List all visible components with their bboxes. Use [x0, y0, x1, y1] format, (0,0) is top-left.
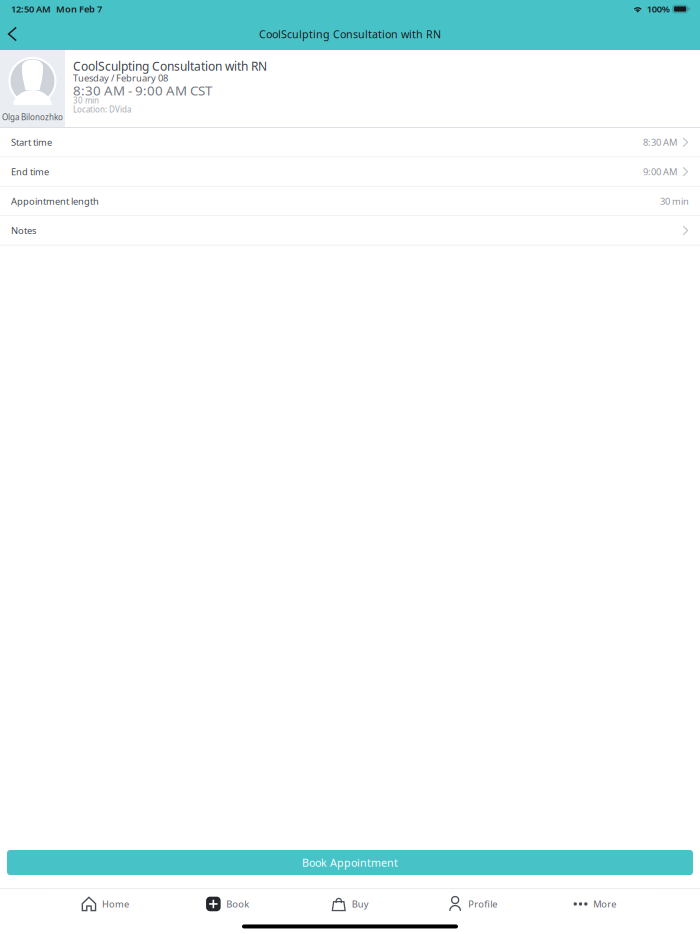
staticText: Appointment length	[11, 195, 99, 207]
button[interactable]: Back	[0, 18, 26, 50]
button[interactable]: Appointment length	[0, 187, 700, 216]
button[interactable]: Profile	[411, 889, 534, 919]
button[interactable]: Home	[44, 889, 166, 919]
button[interactable]: Buy	[289, 889, 411, 919]
staticText: End time	[11, 165, 49, 178]
staticText: CoolSculpting Consultation with RN	[73, 58, 267, 74]
staticText: 30 min	[660, 195, 689, 207]
staticText: Location: DVida	[73, 104, 131, 115]
staticText: Tuesday / February 08	[73, 72, 168, 84]
staticText: Notes	[11, 224, 36, 237]
button[interactable]: Start time	[0, 128, 700, 157]
staticText: More	[593, 898, 616, 910]
button[interactable]: Notes	[0, 216, 700, 246]
button[interactable]: Book	[166, 889, 289, 919]
staticText: 9:00 AM	[643, 165, 677, 178]
staticText: 8:30 AM - 9:00 AM CST	[73, 81, 212, 99]
staticText: 30 min	[73, 95, 99, 106]
staticText: CoolSculpting Consultation with RN	[259, 27, 441, 41]
staticText: Book	[226, 898, 249, 910]
staticText: Buy	[352, 898, 369, 910]
button[interactable]: More	[534, 889, 656, 919]
staticText: Profile	[468, 898, 497, 910]
staticText: 8:30 AM	[643, 136, 677, 148]
staticText: Olga Bilonozhko	[2, 112, 63, 122]
button[interactable]: End time	[0, 157, 700, 187]
staticText: 100%	[647, 3, 670, 15]
staticText: Book Appointment	[302, 855, 398, 870]
staticText: Mon Feb 7	[56, 3, 102, 15]
button[interactable]: Book Appointment	[7, 850, 693, 875]
staticText: Start time	[11, 136, 52, 148]
staticText: 12:50 AM	[11, 3, 51, 15]
staticText: Home	[102, 898, 129, 910]
